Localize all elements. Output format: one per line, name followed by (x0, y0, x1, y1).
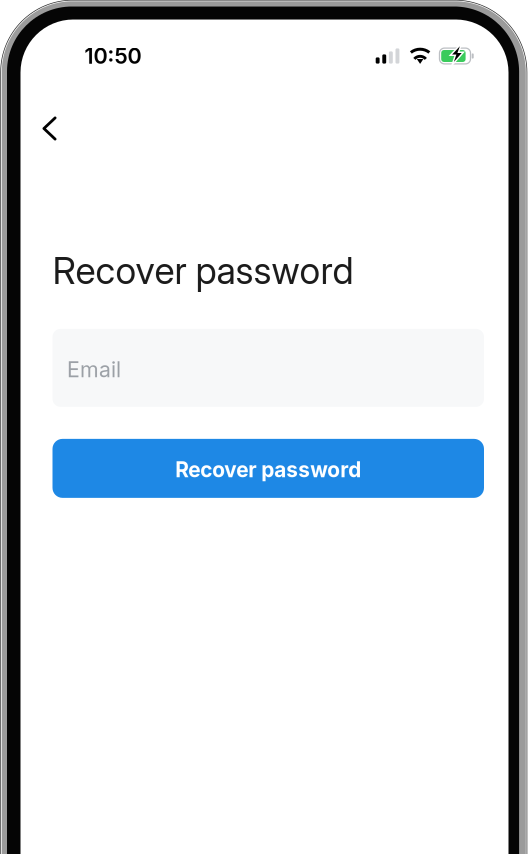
button[interactable]: Recover password (52, 439, 484, 498)
staticText: Email (67, 357, 121, 382)
button[interactable]: Back (20, 103, 71, 153)
staticText: 10:50 (84, 43, 141, 69)
staticText: Recover password (175, 457, 361, 482)
staticText: Recover password (52, 248, 353, 293)
